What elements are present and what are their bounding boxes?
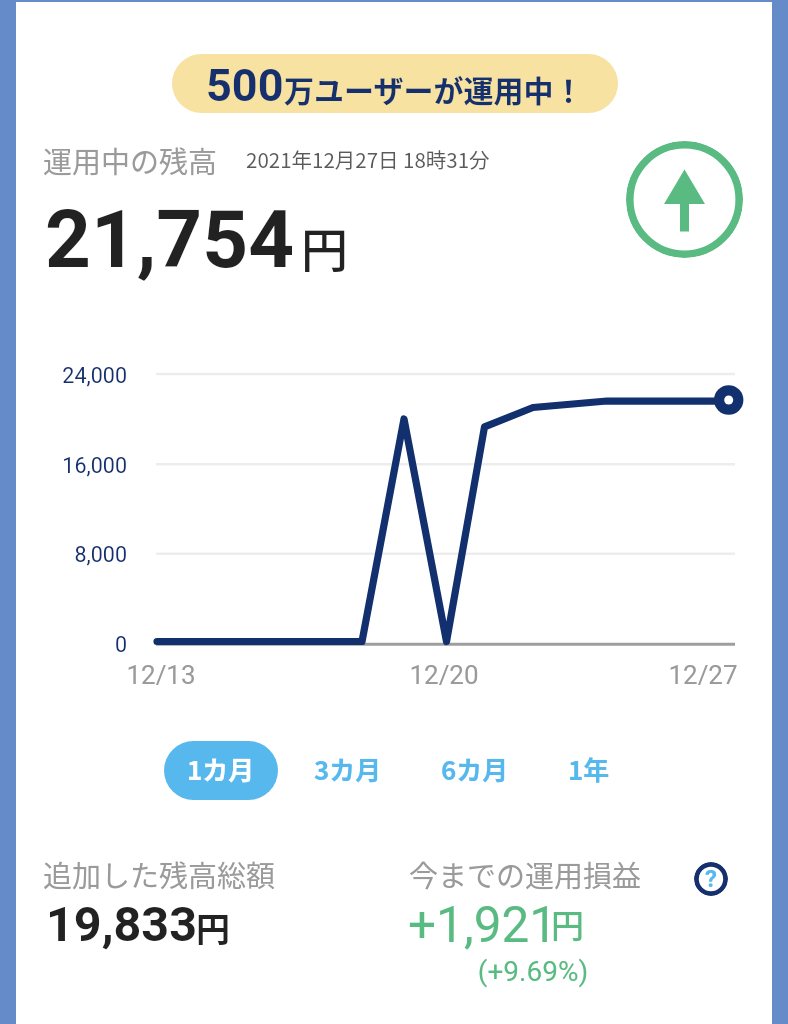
staticText: 運用中の残高 <box>43 139 218 181</box>
button[interactable]: 1カ月 <box>164 741 278 800</box>
button[interactable]: 6カ月 <box>418 741 532 800</box>
staticText: 24,000 <box>27 363 127 388</box>
button[interactable]: 1年 <box>532 741 646 800</box>
staticText: 6カ月 <box>441 750 509 788</box>
staticText: 21,754 <box>45 193 295 287</box>
staticText: 12/27 <box>653 660 753 690</box>
button[interactable]: 500 <box>172 54 618 113</box>
staticText: +1,921 <box>408 896 558 954</box>
staticText: 円 <box>301 212 348 280</box>
staticText: 追加した残高総額 <box>43 853 276 895</box>
button[interactable]: Help <box>694 862 728 896</box>
staticText: 8,000 <box>27 542 127 567</box>
button[interactable]: 3カ月 <box>291 741 405 800</box>
staticText: 12/13 <box>111 660 211 690</box>
staticText: 12/20 <box>394 660 494 690</box>
staticText: 1カ月 <box>187 750 255 788</box>
staticText: ? <box>705 865 717 893</box>
staticText: 16,000 <box>27 453 127 478</box>
staticText: 円 <box>196 903 230 952</box>
staticText: 万ユーザーが運用中！ <box>284 67 584 110</box>
staticText: 500 <box>206 59 284 112</box>
staticText: 今までの運用損益 <box>409 853 642 895</box>
staticText: (+9.69%) <box>433 955 633 988</box>
staticText: 円 <box>551 900 584 948</box>
staticText: 1年 <box>568 750 610 788</box>
staticText: 3カ月 <box>314 750 382 788</box>
staticText: 2021年12月27日 18時31分 <box>246 144 490 174</box>
staticText: 0 <box>27 632 127 657</box>
staticText: 19,833 <box>46 896 197 953</box>
button[interactable]: Add funds <box>626 141 743 258</box>
